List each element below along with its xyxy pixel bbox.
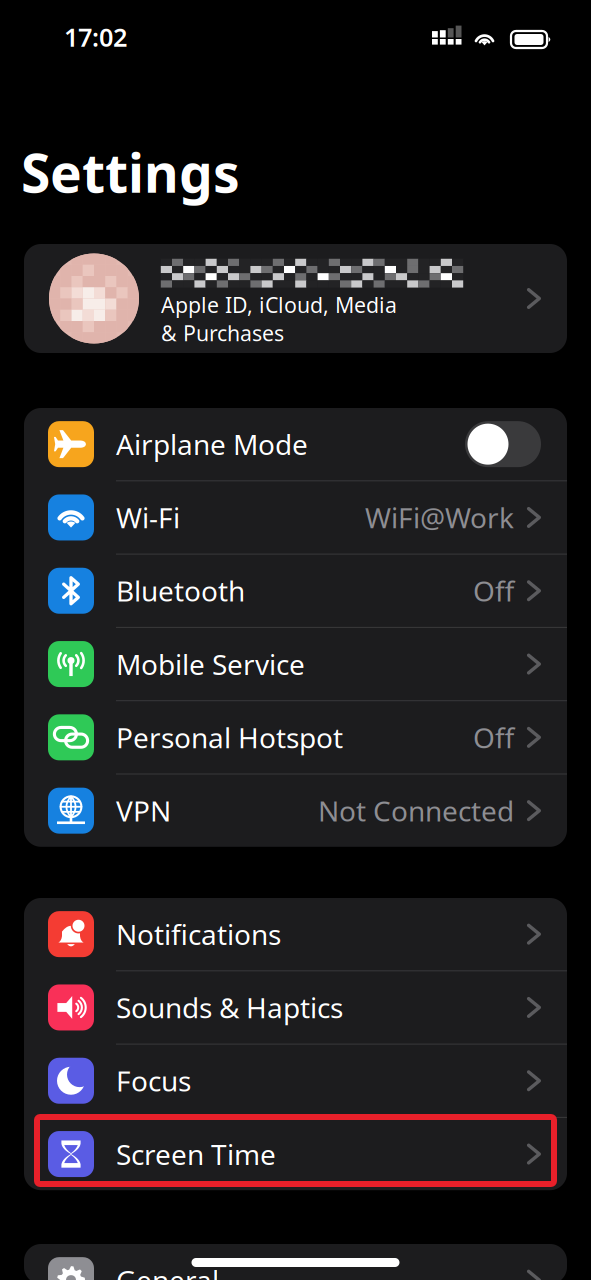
staticText: Wi-Fi (116, 499, 180, 536)
staticText: Focus (116, 1062, 191, 1099)
staticText: Not Connected (318, 792, 514, 829)
button[interactable]: Notifications (24, 898, 567, 970)
staticText: Settings (21, 137, 240, 207)
staticText: 17:02 (64, 20, 127, 54)
button[interactable]: Sounds & Haptics (24, 971, 567, 1044)
staticText: Mobile Service (116, 645, 305, 683)
staticText: Apple ID, iCloud, Media (161, 291, 397, 319)
button[interactable]: Bluetooth (24, 555, 567, 627)
staticText: Sounds & Haptics (116, 989, 343, 1026)
staticText: General (116, 1262, 219, 1280)
staticText: Notifications (116, 916, 281, 953)
button[interactable]: Focus (24, 1045, 567, 1117)
button[interactable]: Airplane Mode (465, 421, 541, 467)
staticText: Off (473, 719, 514, 756)
staticText: WiFi@Work (365, 499, 514, 536)
button[interactable]: Apple ID, iCloud, Media (24, 244, 567, 353)
staticText: Airplane Mode (116, 426, 308, 463)
button[interactable]: VPN (24, 774, 567, 847)
staticText: Screen Time (116, 1135, 276, 1173)
staticText: Personal Hotspot (116, 719, 343, 756)
staticText: & Purchases (161, 319, 284, 347)
button[interactable]: Personal Hotspot (24, 701, 567, 773)
staticText: Bluetooth (116, 572, 245, 609)
button[interactable]: General (24, 1244, 567, 1280)
staticText: VPN (116, 792, 171, 829)
staticText: Off (473, 572, 514, 609)
button[interactable]: Mobile Service (24, 628, 567, 700)
button[interactable]: Airplane Mode (24, 408, 567, 480)
button[interactable]: Wi-Fi (24, 481, 567, 554)
button[interactable]: Screen Time (24, 1118, 567, 1190)
